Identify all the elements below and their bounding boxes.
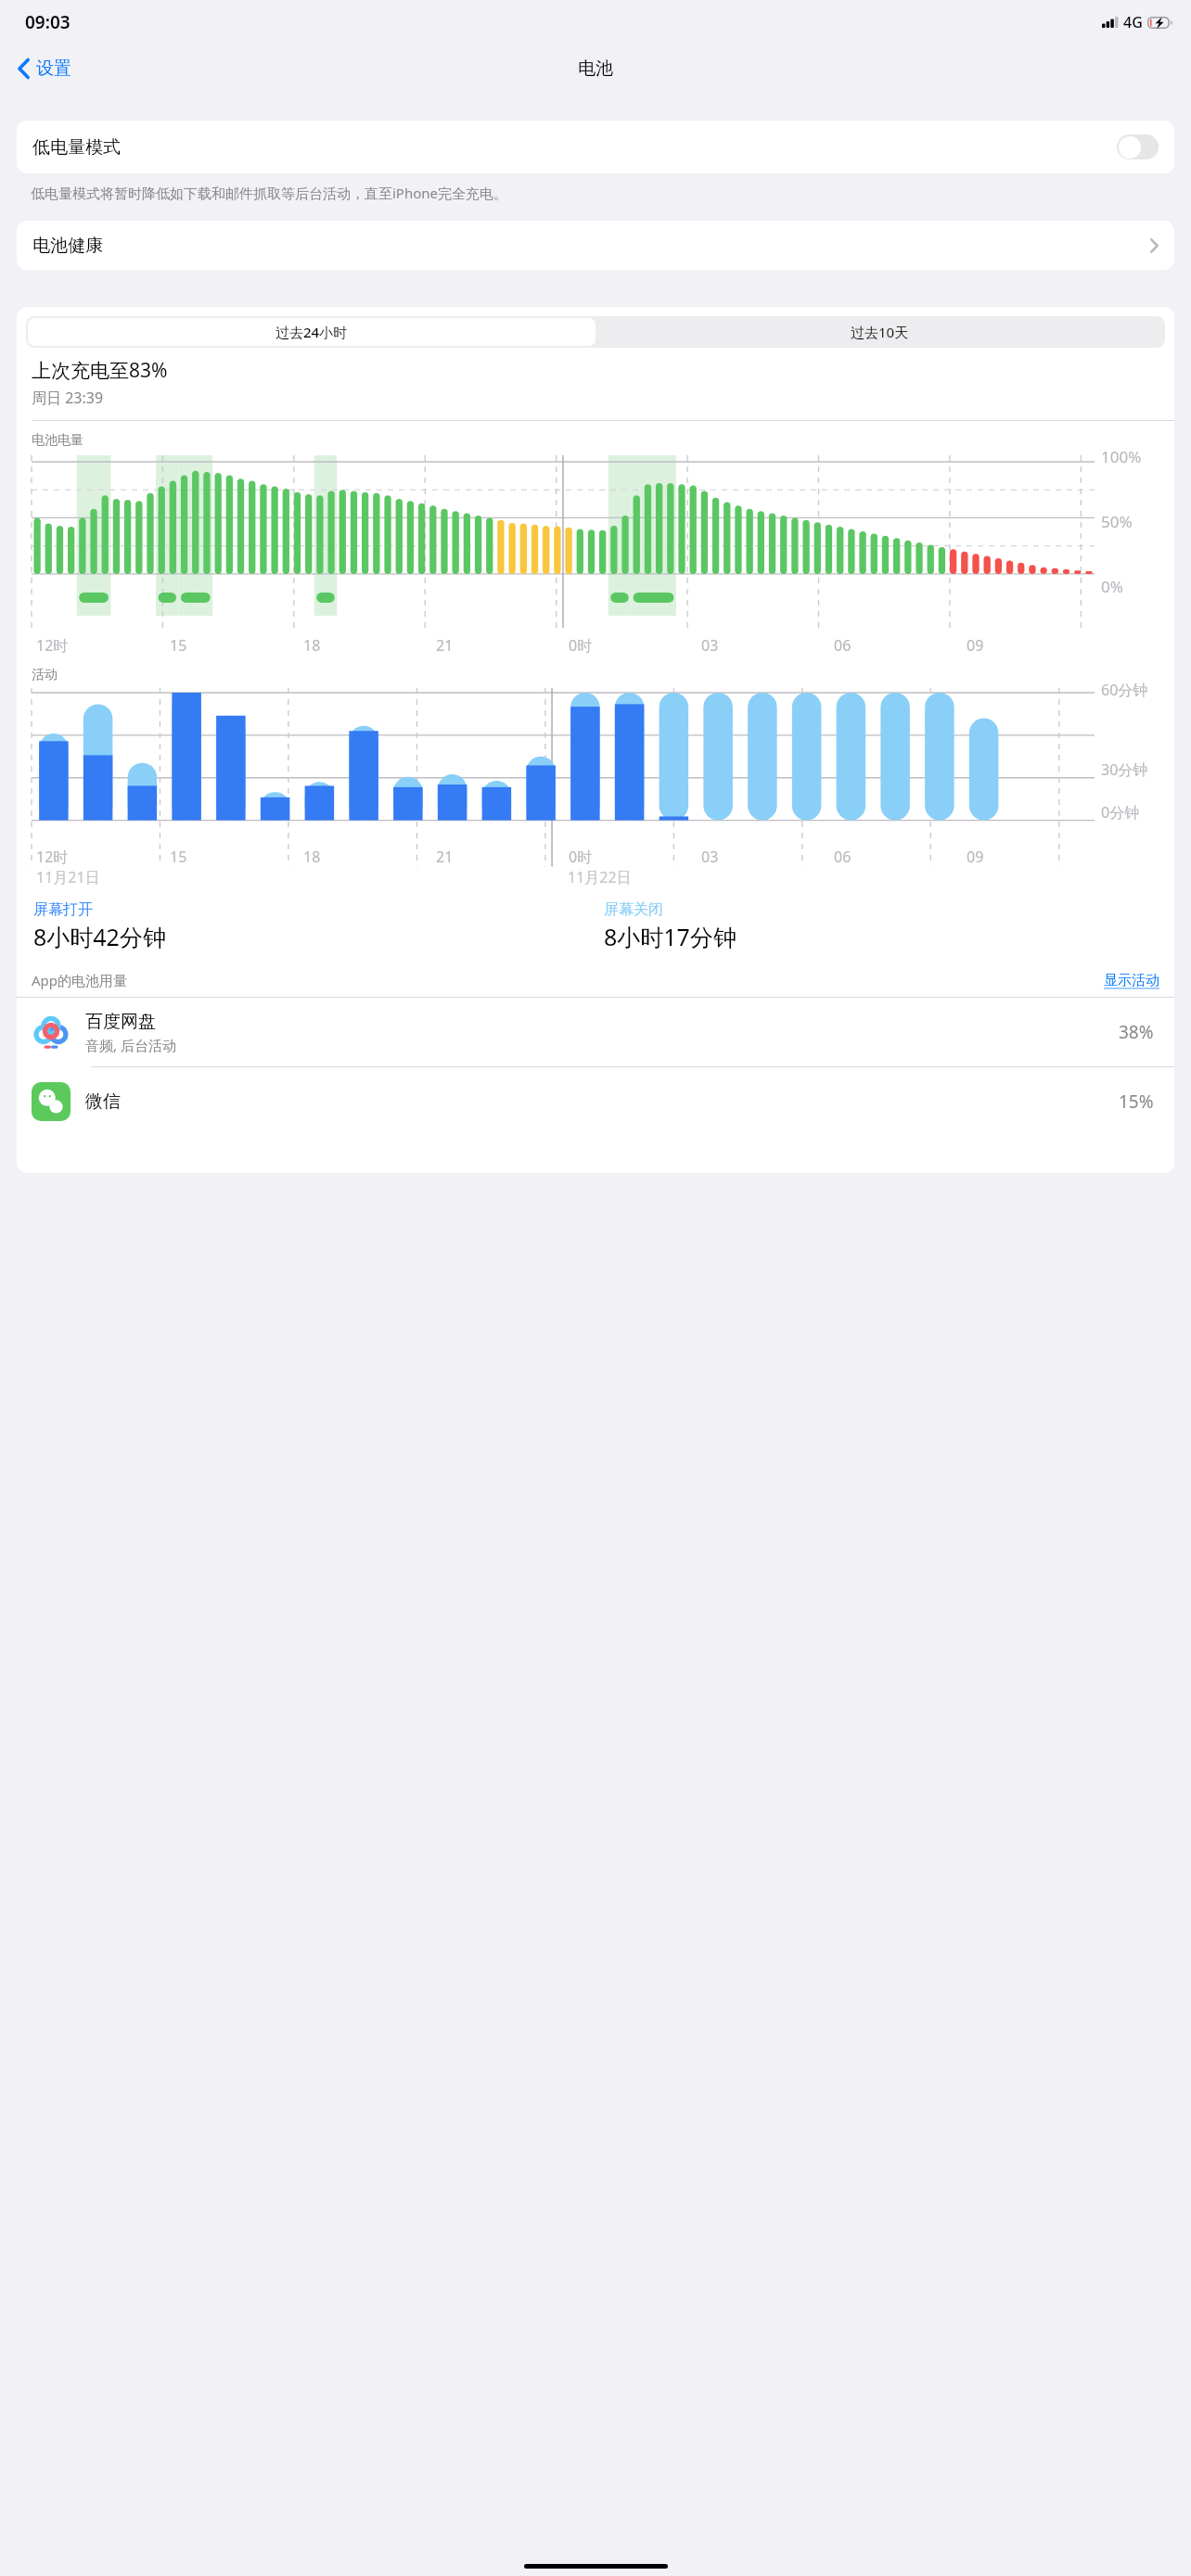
staticText: 低电量模式 bbox=[32, 136, 121, 159]
staticText: 屏幕打开 bbox=[33, 900, 93, 919]
staticText: 15 bbox=[170, 635, 187, 656]
staticText: 4G bbox=[1123, 12, 1143, 32]
staticText: 11月22日 bbox=[568, 867, 632, 887]
staticText: 过去10天 bbox=[851, 323, 909, 341]
staticText: 100% bbox=[1101, 446, 1142, 467]
button[interactable]: 低电量模式 bbox=[17, 121, 1174, 173]
staticText: 8小时17分钟 bbox=[604, 921, 736, 952]
staticText: 电池电量 bbox=[32, 432, 83, 449]
staticText: 电池 bbox=[578, 57, 613, 80]
staticText: 15% bbox=[1119, 1090, 1154, 1114]
button[interactable]: 微信 bbox=[17, 1067, 1174, 1136]
staticText: 0分钟 bbox=[1101, 802, 1140, 823]
staticText: 活动 bbox=[32, 667, 58, 683]
staticText: 0时 bbox=[569, 847, 593, 867]
staticText: 50% bbox=[1101, 511, 1133, 532]
staticText: 电池健康 bbox=[32, 235, 103, 257]
button[interactable]: 显示活动 bbox=[1104, 972, 1159, 989]
staticText: 屏幕关闭 bbox=[604, 900, 663, 919]
staticText: 12时 bbox=[36, 847, 69, 867]
staticText: 12时 bbox=[36, 635, 69, 656]
staticText: 音频, 后台活动 bbox=[85, 1036, 176, 1054]
button[interactable]: 过去24小时 bbox=[28, 318, 595, 346]
staticText: 09 bbox=[967, 847, 984, 867]
staticText: 过去24小时 bbox=[275, 323, 348, 341]
staticText: 09:03 bbox=[25, 10, 70, 34]
staticText: 低电量模式将暂时降低如下载和邮件抓取等后台活动，直至iPhone完全充电。 bbox=[31, 184, 508, 202]
staticText: 0时 bbox=[569, 635, 593, 656]
staticText: App的电池用量 bbox=[32, 971, 128, 989]
staticText: 18 bbox=[303, 847, 321, 867]
staticText: 21 bbox=[436, 847, 454, 867]
staticText: 百度网盘 bbox=[85, 1011, 156, 1033]
button[interactable]: 电池健康 bbox=[17, 221, 1174, 270]
staticText: 周日 23:39 bbox=[32, 388, 104, 408]
staticText: 设置 bbox=[36, 57, 71, 80]
staticText: 0% bbox=[1101, 576, 1123, 597]
button[interactable]: 设置 bbox=[13, 54, 77, 83]
staticText: 03 bbox=[701, 847, 719, 867]
staticText: 上次充电至83% bbox=[32, 357, 168, 384]
staticText: 03 bbox=[701, 635, 719, 656]
button[interactable]: 低电量模式开关 bbox=[1117, 134, 1159, 159]
staticText: 18 bbox=[303, 635, 321, 656]
staticText: 15 bbox=[170, 847, 187, 867]
staticText: 显示活动 bbox=[1104, 972, 1159, 989]
button[interactable]: 百度网盘 bbox=[17, 998, 1174, 1066]
staticText: 11月21日 bbox=[36, 867, 100, 887]
staticText: 60分钟 bbox=[1101, 680, 1148, 700]
button[interactable]: 过去10天 bbox=[595, 318, 1163, 346]
staticText: 30分钟 bbox=[1101, 759, 1148, 780]
staticText: 09 bbox=[967, 635, 984, 656]
staticText: 06 bbox=[834, 635, 852, 656]
staticText: 微信 bbox=[85, 1090, 121, 1113]
staticText: 06 bbox=[834, 847, 852, 867]
staticText: 8小时42分钟 bbox=[33, 921, 166, 952]
staticText: 38% bbox=[1119, 1020, 1154, 1044]
staticText: 21 bbox=[436, 635, 454, 656]
